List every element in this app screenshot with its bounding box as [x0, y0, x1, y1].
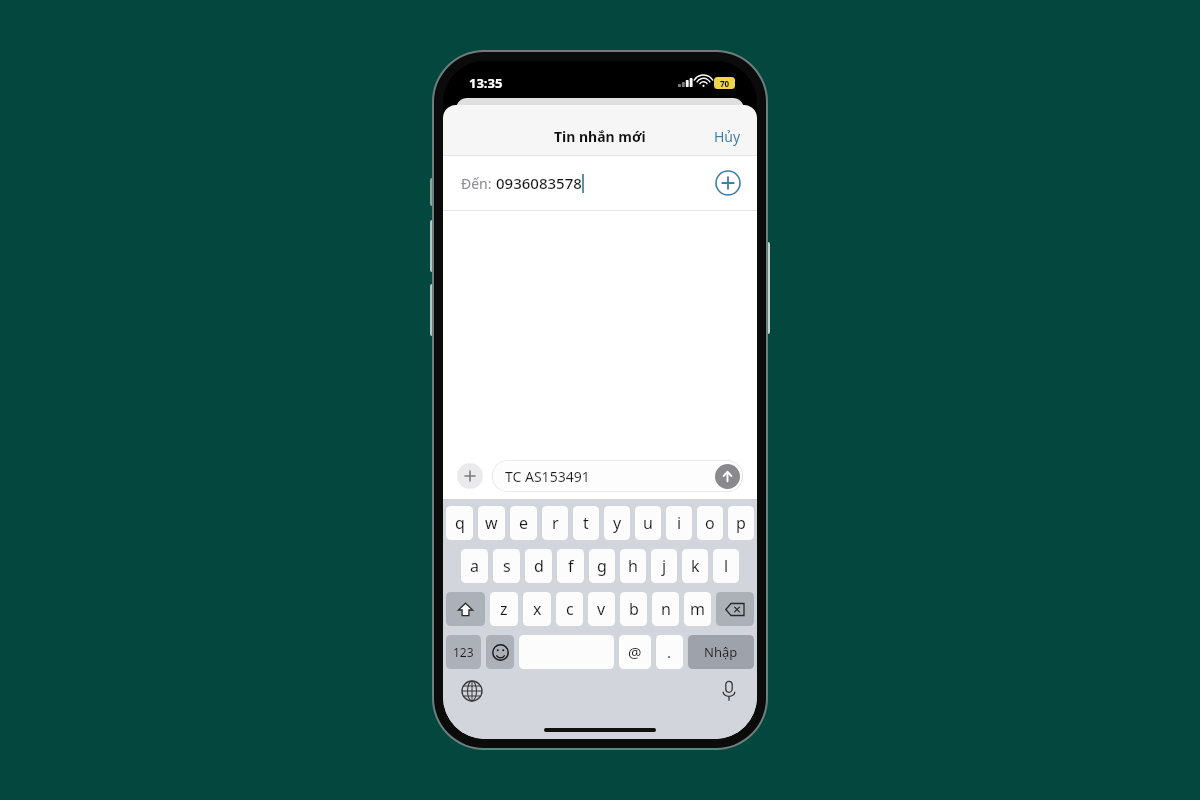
staticText: l: [724, 555, 729, 577]
staticText: n: [661, 598, 671, 620]
button[interactable]: c: [556, 592, 583, 626]
staticText: j: [662, 555, 667, 577]
staticText: Hủy: [714, 127, 741, 146]
button[interactable]: i: [666, 506, 692, 540]
button[interactable]: m: [684, 592, 711, 626]
button[interactable]: 123: [446, 635, 481, 669]
staticText: 13:35: [469, 74, 503, 92]
button[interactable]: g: [589, 549, 615, 583]
button[interactable]: Dictation: [721, 680, 737, 702]
button[interactable]: r: [542, 506, 568, 540]
button[interactable]: Emoji: [486, 635, 514, 669]
button[interactable]: o: [697, 506, 723, 540]
staticText: c: [566, 598, 574, 620]
button[interactable]: Hủy: [698, 120, 757, 153]
button[interactable]: Change keyboard: [461, 680, 483, 702]
staticText: Tin nhắn mới: [554, 127, 646, 146]
staticText: k: [691, 555, 700, 577]
staticText: p: [736, 512, 746, 534]
button[interactable]: Shift: [446, 592, 485, 626]
button[interactable]: a: [461, 549, 488, 583]
button[interactable]: w: [478, 506, 505, 540]
button[interactable]: n: [652, 592, 679, 626]
button[interactable]: j: [651, 549, 677, 583]
button[interactable]: Backspace: [716, 592, 754, 626]
staticText: Nhập: [704, 643, 738, 661]
staticText: t: [583, 512, 589, 534]
staticText: v: [597, 598, 606, 620]
staticText: b: [629, 598, 639, 620]
staticText: 0936083578: [496, 173, 582, 193]
staticText: a: [470, 555, 479, 577]
button[interactable]: TC AS153491: [492, 460, 743, 492]
button[interactable]: y: [604, 506, 630, 540]
staticText: m: [690, 598, 705, 620]
staticText: d: [534, 555, 544, 577]
button[interactable]: q: [446, 506, 473, 540]
button[interactable]: x: [523, 592, 551, 626]
staticText: TC AS153491: [505, 467, 590, 486]
staticText: .: [667, 642, 672, 662]
staticText: h: [628, 555, 638, 577]
staticText: e: [519, 512, 529, 534]
staticText: Đến:: [461, 174, 496, 193]
button[interactable]: Send: [715, 464, 740, 489]
button[interactable]: v: [588, 592, 615, 626]
staticText: w: [485, 512, 498, 534]
button[interactable]: d: [525, 549, 552, 583]
staticText: z: [500, 598, 508, 620]
staticText: u: [643, 512, 653, 534]
staticText: 70: [720, 78, 730, 89]
button[interactable]: z: [490, 592, 518, 626]
staticText: g: [597, 555, 607, 577]
button[interactable]: l: [713, 549, 739, 583]
button[interactable]: Đến:: [443, 156, 757, 210]
button[interactable]: u: [635, 506, 661, 540]
staticText: @: [628, 642, 642, 662]
staticText: o: [705, 512, 715, 534]
button[interactable]: Nhập: [688, 635, 754, 669]
staticText: x: [533, 598, 542, 620]
button[interactable]: Add contact: [715, 170, 741, 196]
staticText: s: [503, 555, 511, 577]
button[interactable]: s: [493, 549, 520, 583]
button[interactable]: b: [620, 592, 647, 626]
button[interactable]: .: [656, 635, 683, 669]
button[interactable]: f: [557, 549, 584, 583]
button[interactable]: k: [682, 549, 708, 583]
staticText: i: [677, 512, 682, 534]
button[interactable]: h: [620, 549, 646, 583]
staticText: 123: [453, 644, 474, 660]
staticText: f: [568, 555, 574, 577]
button[interactable]: t: [573, 506, 599, 540]
staticText: r: [552, 512, 559, 534]
button[interactable]: e: [510, 506, 537, 540]
button[interactable]: @: [619, 635, 651, 669]
staticText: q: [455, 512, 465, 534]
button[interactable]: p: [728, 506, 754, 540]
button[interactable]: Attach: [457, 463, 483, 489]
staticText: y: [613, 512, 622, 534]
